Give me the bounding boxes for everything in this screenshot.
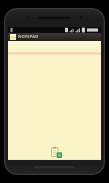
button[interactable]: NOTEPAD [8, 33, 101, 41]
button[interactable]: New note [48, 146, 62, 159]
button[interactable]: New note [8, 41, 101, 160]
staticText: NOTEPAD [18, 34, 39, 40]
